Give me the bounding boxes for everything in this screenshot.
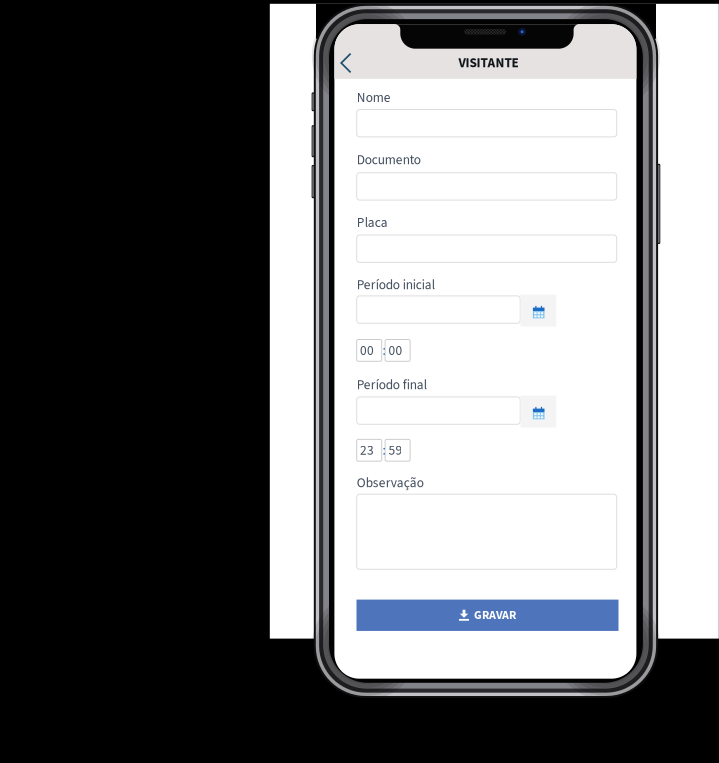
staticText: 23 [360,441,374,460]
staticText: Nome [357,88,391,107]
staticText: Documento [357,151,421,170]
staticText: Placa [357,213,388,232]
staticText: GRAVAR [474,607,516,624]
staticText: : [383,441,386,460]
staticText: Período inicial [357,276,435,295]
button[interactable]: Voltar [336,48,364,78]
staticText: 00 [388,341,402,360]
staticText: VISITANTE [458,54,518,73]
staticText: Período final [357,376,427,395]
button[interactable]: Escolher data [520,396,556,427]
staticText: 00 [360,341,374,360]
staticText: Observação [357,473,424,492]
button[interactable]: GRAVAR [356,600,618,631]
button[interactable]: Escolher data [520,295,556,326]
staticText: 59 [388,441,402,460]
staticText: : [383,341,386,360]
